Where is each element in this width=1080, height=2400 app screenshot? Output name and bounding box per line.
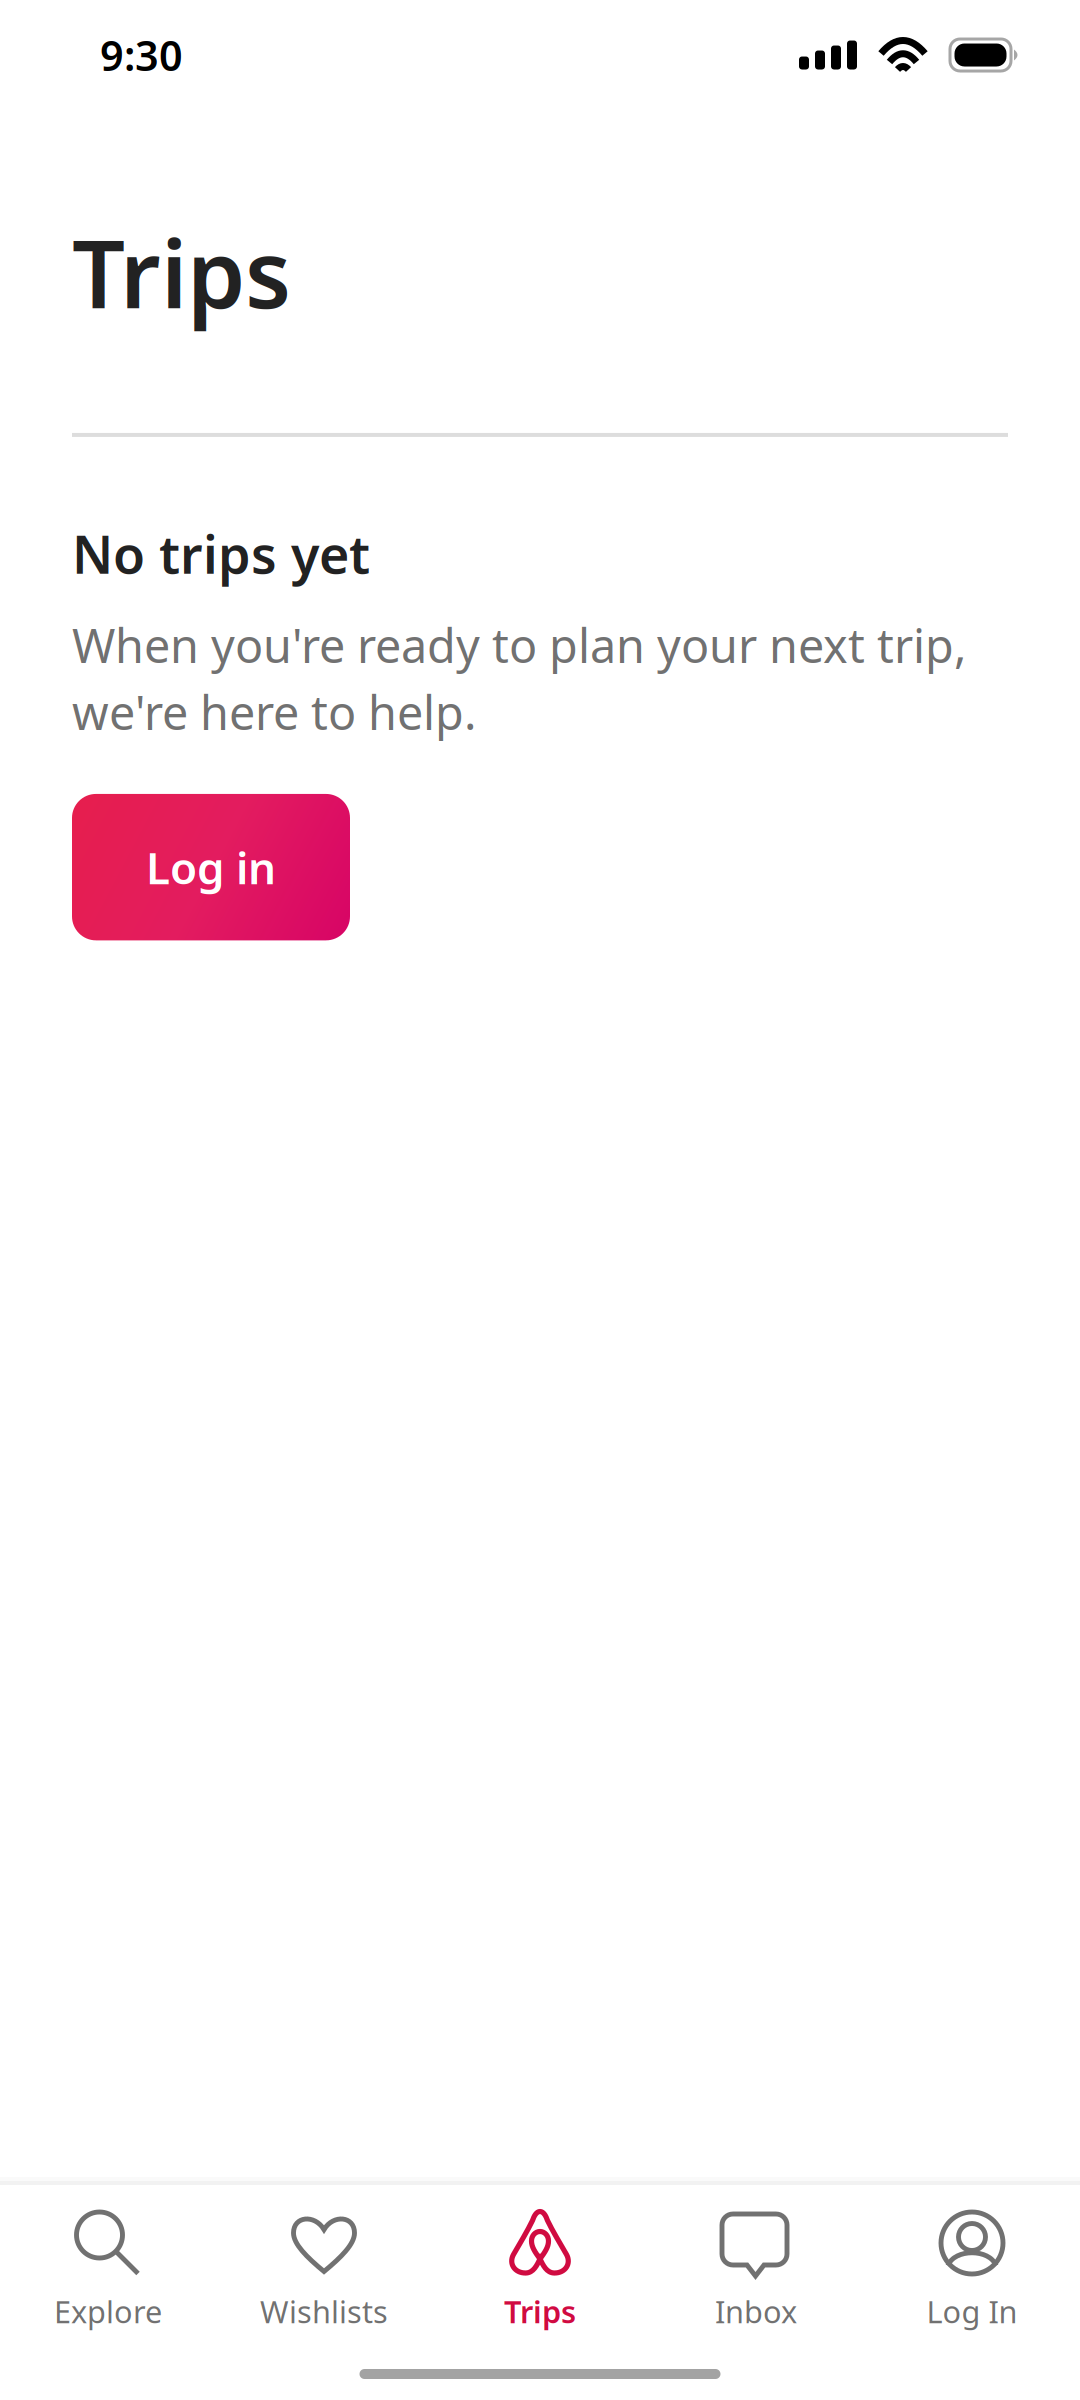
staticText: No trips yet [72, 519, 370, 588]
button[interactable]: Trips [432, 2185, 648, 2332]
staticText: Log In [926, 2291, 1017, 2332]
button[interactable]: Log in [72, 794, 350, 940]
button[interactable]: Inbox [648, 2185, 864, 2332]
staticText: Log in [146, 838, 276, 896]
button[interactable]: Wishlists [216, 2185, 432, 2332]
staticText: Wishlists [260, 2291, 388, 2332]
button[interactable]: Explore [0, 2185, 216, 2332]
staticText: Trips [504, 2291, 576, 2332]
staticText: Inbox [715, 2291, 797, 2332]
staticText: Explore [54, 2291, 162, 2332]
staticText: Trips [72, 210, 291, 334]
staticText: 9:30 [100, 28, 183, 82]
staticText: When you're ready to plan your next trip… [72, 614, 967, 743]
button[interactable]: Log In [864, 2185, 1080, 2332]
